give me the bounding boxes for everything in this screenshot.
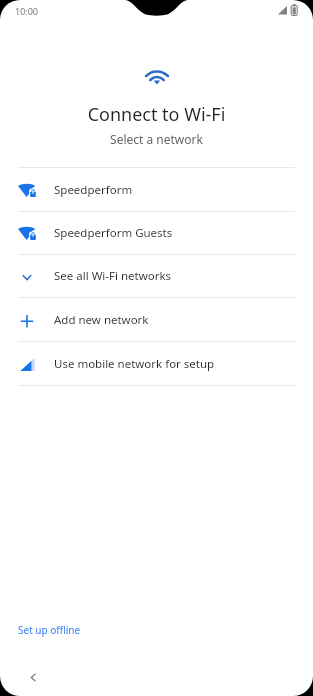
staticText: Set up offline: [18, 623, 81, 637]
button[interactable]: Use mobile network for setup: [0, 342, 313, 385]
button[interactable]: Back: [20, 664, 46, 690]
button[interactable]: See all Wi-Fi networks: [0, 255, 313, 297]
staticText: Connect to Wi-Fi: [0, 102, 313, 127]
staticText: 10:00: [15, 5, 39, 17]
button[interactable]: Set up offline: [18, 623, 81, 637]
staticText: Add new network: [54, 312, 149, 328]
staticText: Speedperform Guests: [54, 225, 173, 241]
staticText: See all Wi-Fi networks: [54, 268, 172, 284]
button[interactable]: Speedperform Guests: [0, 212, 313, 254]
button[interactable]: Add new network: [0, 298, 313, 341]
staticText: Select a network: [0, 131, 313, 147]
button[interactable]: Speedperform: [0, 168, 313, 211]
staticText: Speedperform: [54, 182, 133, 198]
staticText: Use mobile network for setup: [54, 356, 215, 372]
